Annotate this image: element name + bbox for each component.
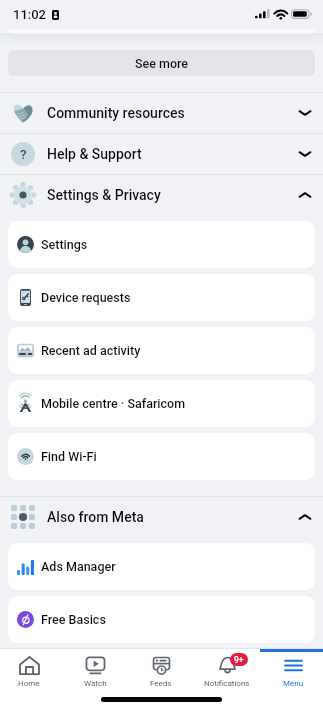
button[interactable]: Find Wi-Fi	[8, 433, 315, 480]
staticText: Settings	[41, 237, 88, 252]
button[interactable]: Device requests	[8, 274, 315, 321]
staticText: Help & Support	[47, 146, 298, 162]
button[interactable]: Feeds	[128, 649, 194, 694]
button[interactable]: Mobile centre · Safaricom	[8, 380, 315, 427]
button[interactable]: Watch	[62, 649, 128, 694]
staticText: Community resources	[47, 105, 298, 121]
staticText: Recent ad activity	[41, 343, 141, 358]
button[interactable]: Free Basics	[8, 596, 315, 643]
button[interactable]: Settings & Privacy	[0, 175, 323, 215]
staticText: Notifications	[204, 679, 250, 688]
button[interactable]: See more	[8, 50, 315, 76]
staticText: Watch	[84, 679, 107, 688]
button[interactable]: Home	[0, 649, 62, 694]
staticText: Find Wi-Fi	[41, 449, 97, 464]
staticText: Free Basics	[41, 612, 106, 627]
other: Feeds	[151, 655, 172, 676]
other: Home	[19, 655, 40, 676]
button[interactable]: Recent ad activity	[8, 327, 315, 374]
staticText: ?	[20, 146, 27, 162]
button[interactable]: Community resources	[0, 93, 323, 133]
staticText: Menu	[283, 679, 304, 688]
staticText: Home	[18, 679, 40, 688]
button[interactable]: Settings	[8, 221, 315, 268]
other: Menu	[283, 655, 304, 676]
button[interactable]: Notifications	[194, 649, 260, 694]
staticText: Mobile centre · Safaricom	[41, 396, 186, 411]
button[interactable]: Ads Manager	[8, 543, 315, 590]
button[interactable]: Also from Meta	[0, 497, 323, 537]
staticText: Also from Meta	[47, 509, 298, 525]
staticText: Device requests	[41, 290, 131, 305]
staticText: Ads Manager	[41, 559, 116, 574]
staticText: See more	[135, 56, 189, 71]
other: Watch	[85, 655, 106, 676]
staticText: 11:02	[13, 7, 47, 22]
staticText: 9+	[234, 655, 244, 665]
other: Notifications	[217, 655, 238, 676]
button[interactable]: Menu	[260, 649, 323, 694]
staticText: Feeds	[150, 679, 172, 688]
button[interactable]: ?	[0, 134, 323, 174]
staticText: Settings & Privacy	[47, 187, 298, 203]
